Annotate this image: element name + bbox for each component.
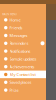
staticText: Prize (9, 87, 18, 93)
staticText: MAIN MENU (2, 12, 17, 16)
staticText: Saved places (9, 80, 31, 85)
button[interactable]: Saved places (0, 78, 46, 86)
staticText: Messages (9, 33, 27, 38)
button[interactable]: Friends (0, 24, 46, 32)
staticText: My Contact list (9, 72, 35, 77)
staticText: Friends (9, 25, 22, 30)
button[interactable]: Sample updates (0, 55, 46, 63)
button[interactable]: Reminders (0, 39, 46, 47)
staticText: Reminders (9, 41, 28, 46)
staticText: Home (9, 17, 20, 22)
button[interactable]: Home (0, 16, 46, 24)
button[interactable]: Prize (0, 86, 46, 94)
staticText: Notifications (9, 48, 30, 54)
staticText: Sample updates (9, 56, 36, 61)
staticText: Achievements (9, 64, 34, 69)
button[interactable]: Achievements (0, 63, 46, 71)
button[interactable]: Messages (0, 32, 46, 39)
button[interactable]: My Contact list (0, 71, 46, 78)
button[interactable]: Notifications (0, 47, 46, 55)
